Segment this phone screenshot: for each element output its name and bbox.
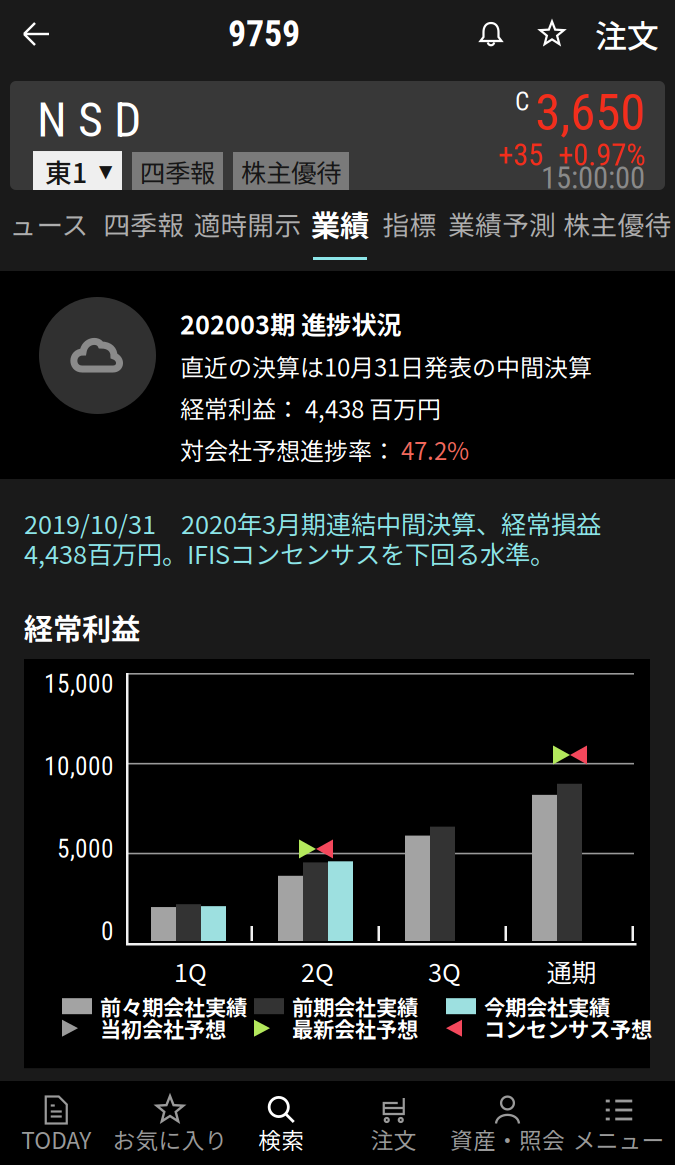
button[interactable]: 指標 bbox=[375, 190, 444, 271]
staticText: 4,438百万円。IFISコンセンサスを下回る水準。 bbox=[24, 535, 555, 571]
staticText: ュース bbox=[9, 204, 88, 243]
staticText: 経常利益： 4,438 百万円 bbox=[180, 390, 441, 425]
staticText: 1Q bbox=[174, 952, 207, 989]
staticText: 経常利益 bbox=[24, 606, 140, 648]
staticText: メニュー bbox=[573, 1123, 665, 1155]
staticText: +0.97% bbox=[558, 137, 645, 173]
staticText: お気に入り bbox=[112, 1123, 227, 1155]
button[interactable]: 注文 bbox=[337, 1081, 450, 1165]
staticText: TODAY bbox=[21, 1123, 91, 1155]
button[interactable]: お気に入り bbox=[112, 1081, 225, 1165]
staticText: N S D bbox=[37, 92, 141, 148]
staticText: 3Q bbox=[428, 952, 461, 989]
button[interactable]: 注文 bbox=[583, 0, 675, 75]
staticText: 株主優待 bbox=[563, 204, 671, 243]
staticText: 当初会社予想 bbox=[100, 1013, 226, 1044]
button[interactable]: 株主優待 bbox=[560, 190, 675, 271]
staticText: 202003期 進捗状況 bbox=[180, 305, 401, 342]
staticText: 業績予測 bbox=[448, 204, 556, 243]
staticText: 2Q bbox=[301, 952, 334, 989]
button[interactable]: メニュー bbox=[562, 1081, 675, 1165]
staticText: 前期会社実績 bbox=[292, 991, 418, 1022]
staticText: +35 bbox=[498, 137, 543, 173]
staticText: 注文 bbox=[595, 11, 659, 57]
button[interactable]: Back bbox=[0, 0, 67, 68]
staticText: 3,650 bbox=[535, 83, 645, 142]
staticText: 10,000 bbox=[44, 752, 114, 781]
button[interactable]: Alerts bbox=[461, 2, 521, 66]
staticText: 15,000 bbox=[44, 669, 114, 699]
staticText: 5,000 bbox=[57, 834, 114, 864]
button[interactable]: TODAY bbox=[0, 1081, 112, 1165]
staticText: 9759 bbox=[228, 13, 300, 55]
button[interactable]: ュース bbox=[0, 190, 98, 271]
staticText: コンセンサス予想 bbox=[484, 1013, 652, 1044]
staticText: 今期会社実績 bbox=[484, 991, 610, 1022]
staticText: 0 bbox=[101, 917, 114, 946]
staticText: 四季報 bbox=[140, 153, 215, 190]
staticText: 指標 bbox=[382, 204, 436, 243]
staticText: 業績 bbox=[311, 202, 369, 245]
staticText: 注文 bbox=[371, 1123, 417, 1155]
button[interactable]: 検索 bbox=[225, 1081, 337, 1165]
staticText: 対会社予想進捗率： bbox=[180, 432, 401, 467]
button[interactable]: 業績 bbox=[305, 190, 375, 271]
staticText: 通期 bbox=[546, 952, 596, 989]
button[interactable]: 四季報 bbox=[98, 190, 190, 271]
staticText: 株主優待 bbox=[241, 153, 341, 190]
button[interactable]: 資産・照会 bbox=[450, 1081, 562, 1165]
staticText: 適時開示 bbox=[193, 204, 301, 243]
staticText: 四季報 bbox=[103, 204, 184, 243]
staticText: 検索 bbox=[258, 1123, 304, 1155]
staticText: 東1 bbox=[45, 152, 87, 191]
staticText: 前々期会社実績 bbox=[100, 991, 247, 1022]
button[interactable]: 業績予測 bbox=[444, 190, 560, 271]
staticText: 15:00:00 bbox=[541, 160, 645, 196]
staticText: C bbox=[515, 87, 529, 117]
staticText: 資産・照会 bbox=[450, 1123, 565, 1155]
staticText: ▼ bbox=[99, 161, 112, 181]
button[interactable]: Favorite bbox=[521, 2, 583, 66]
staticText: 最新会社予想 bbox=[292, 1013, 418, 1044]
staticText: 2019/10/31 2020年3月期連結中間決算、経常損益 bbox=[24, 505, 601, 541]
staticText: 直近の決算は10月31日発表の中間決算 bbox=[180, 349, 592, 383]
staticText: 47.2% bbox=[401, 432, 469, 467]
button[interactable]: 適時開示 bbox=[190, 190, 305, 271]
